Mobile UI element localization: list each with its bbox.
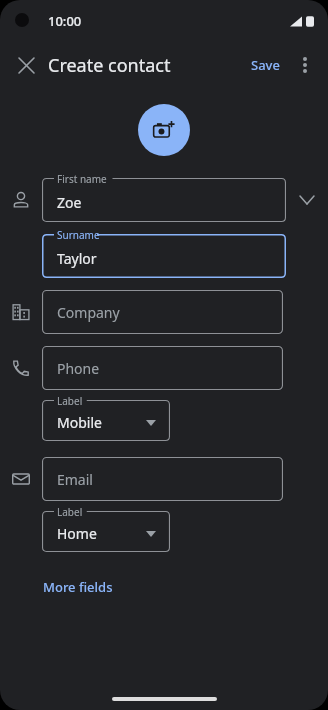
staticText: Home (57, 524, 97, 543)
button[interactable]: Close (8, 47, 44, 83)
button[interactable]: Email (42, 457, 283, 501)
button[interactable]: Expand name fields (286, 178, 328, 222)
button[interactable]: Add photo (138, 104, 190, 156)
button[interactable]: Surname (42, 234, 286, 278)
button[interactable]: More fields (36, 574, 120, 600)
button[interactable]: More options (288, 48, 322, 82)
staticText: Company (57, 303, 120, 322)
staticText: Create contact (48, 53, 171, 78)
staticText: Zoe (57, 193, 82, 212)
button[interactable]: Save (243, 50, 288, 80)
staticText: Email (57, 470, 93, 489)
button[interactable]: First name (42, 178, 286, 222)
staticText: Phone (57, 359, 100, 378)
button[interactable]: Label (42, 400, 170, 441)
staticText: More fields (43, 578, 113, 596)
button[interactable]: Phone (42, 346, 283, 390)
staticText: Label (57, 505, 83, 519)
staticText: Mobile (57, 413, 102, 432)
button[interactable]: Company (42, 290, 283, 334)
button[interactable]: Label (42, 511, 170, 552)
staticText: Taylor (57, 249, 97, 268)
staticText: Save (251, 56, 280, 74)
staticText: 10:00 (48, 12, 82, 30)
staticText: Label (57, 394, 83, 408)
staticText: Surname (57, 228, 100, 242)
staticText: First name (57, 172, 107, 186)
